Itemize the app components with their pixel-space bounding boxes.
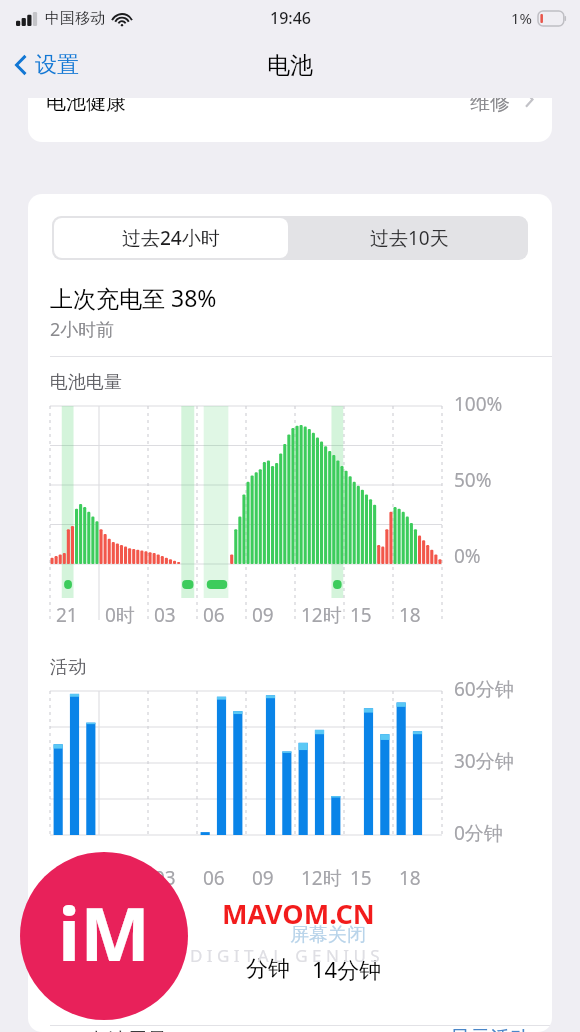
staticText: D I G I T A L G E N I U S — [190, 944, 380, 967]
staticText: 12时 — [301, 602, 342, 628]
staticText: 上次充电至 38% — [50, 282, 217, 313]
staticText: 06 — [203, 865, 225, 891]
staticText: 过去24小时 — [122, 225, 220, 251]
staticText: 活动 — [50, 656, 86, 679]
button[interactable]: 显示活动 — [450, 1026, 530, 1032]
staticText: 09 — [252, 602, 274, 628]
staticText: 60分钟 — [454, 676, 514, 702]
staticText: 0分钟 — [454, 820, 503, 846]
staticText: 1% — [511, 8, 533, 28]
staticText: 03 — [154, 865, 176, 891]
staticText: 19:46 — [270, 7, 311, 29]
staticText: 0% — [454, 543, 481, 569]
staticText: 21 — [56, 602, 78, 628]
staticText: 30分钟 — [454, 748, 514, 774]
staticText: 09 — [252, 865, 274, 891]
staticText: MAVOM.CN — [222, 895, 375, 932]
staticText: 维修 — [470, 98, 510, 115]
staticText: iM — [58, 882, 150, 983]
staticText: 设置 — [35, 51, 79, 79]
button[interactable]: 过去10天 — [290, 216, 528, 260]
staticText: 15 — [350, 865, 372, 891]
button[interactable]: 电池健康 — [28, 98, 552, 142]
staticText: 0时 — [105, 602, 135, 628]
staticText: 50% — [454, 467, 492, 493]
staticText: App电池用量 — [50, 1026, 168, 1032]
staticText: 屏幕关闭 — [290, 923, 366, 947]
staticText: 15 — [350, 602, 372, 628]
staticText: 显示活动 — [450, 1026, 530, 1032]
staticText: 18 — [399, 602, 421, 628]
staticText: 电池电量 — [50, 371, 122, 394]
staticText: 18 — [399, 865, 421, 891]
staticText: 12时 — [301, 865, 342, 891]
button[interactable]: 设置 — [8, 45, 85, 85]
staticText: 中国移动 — [45, 9, 105, 28]
staticText: 21 — [56, 865, 78, 891]
button[interactable]: 过去24小时 — [54, 218, 288, 258]
staticText: 分钟 — [246, 955, 290, 983]
staticText: 100% — [454, 391, 503, 417]
staticText: 过去10天 — [370, 225, 449, 251]
staticText: 2小时前 — [50, 317, 115, 342]
staticText: 14分钟 — [312, 954, 382, 984]
staticText: 03 — [154, 602, 176, 628]
staticText: 电池 — [267, 51, 313, 80]
staticText: 电池健康 — [46, 98, 126, 115]
staticText: 06 — [203, 602, 225, 628]
